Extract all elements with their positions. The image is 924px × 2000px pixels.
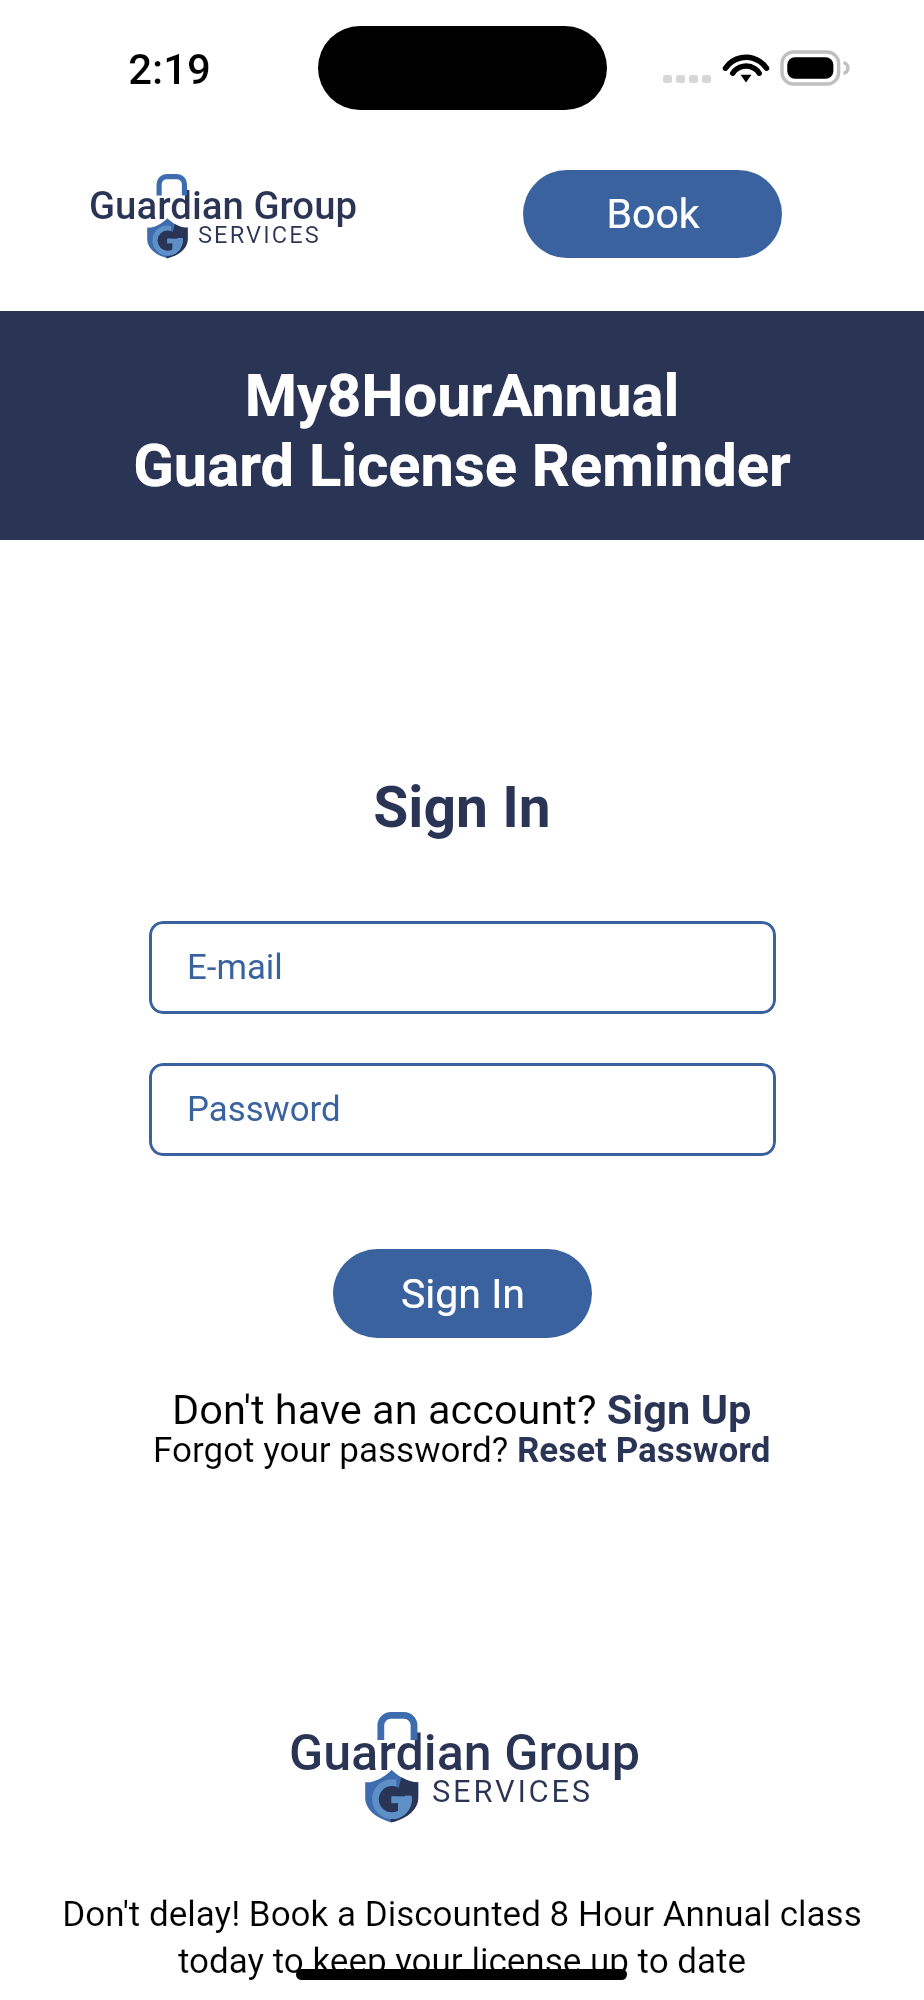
- staticText: Sign In: [373, 774, 551, 841]
- staticText: SERVICES: [198, 221, 321, 249]
- button[interactable]: Book: [523, 170, 782, 258]
- other: Battery full: [782, 52, 846, 84]
- staticText: My8HourAnnual Guard License Reminder: [0, 361, 924, 501]
- button[interactable]: Sign In: [333, 1249, 592, 1338]
- staticText: Guardian Group: [89, 183, 358, 228]
- staticText: Guardian Group: [289, 1723, 640, 1782]
- staticText: 2:19: [128, 45, 211, 94]
- staticText: SERVICES: [432, 1773, 593, 1809]
- staticText: Don't have an account? Sign Up: [172, 1385, 752, 1434]
- staticText: Password: [187, 1089, 341, 1130]
- other: Wi-Fi: [726, 52, 766, 83]
- button[interactable]: Forgot your password? Reset Password: [153, 1430, 771, 1471]
- button[interactable]: E-mail: [149, 921, 776, 1014]
- button[interactable]: Don't have an account? Sign Up: [172, 1385, 752, 1434]
- button[interactable]: Password: [149, 1063, 776, 1156]
- staticText: E-mail: [187, 947, 283, 988]
- staticText: Don't delay! Book a Discounted 8 Hour An…: [0, 1894, 924, 1982]
- staticText: Book: [606, 190, 700, 238]
- staticText: Forgot your password? Reset Password: [153, 1430, 771, 1471]
- staticText: Sign In: [401, 1270, 525, 1318]
